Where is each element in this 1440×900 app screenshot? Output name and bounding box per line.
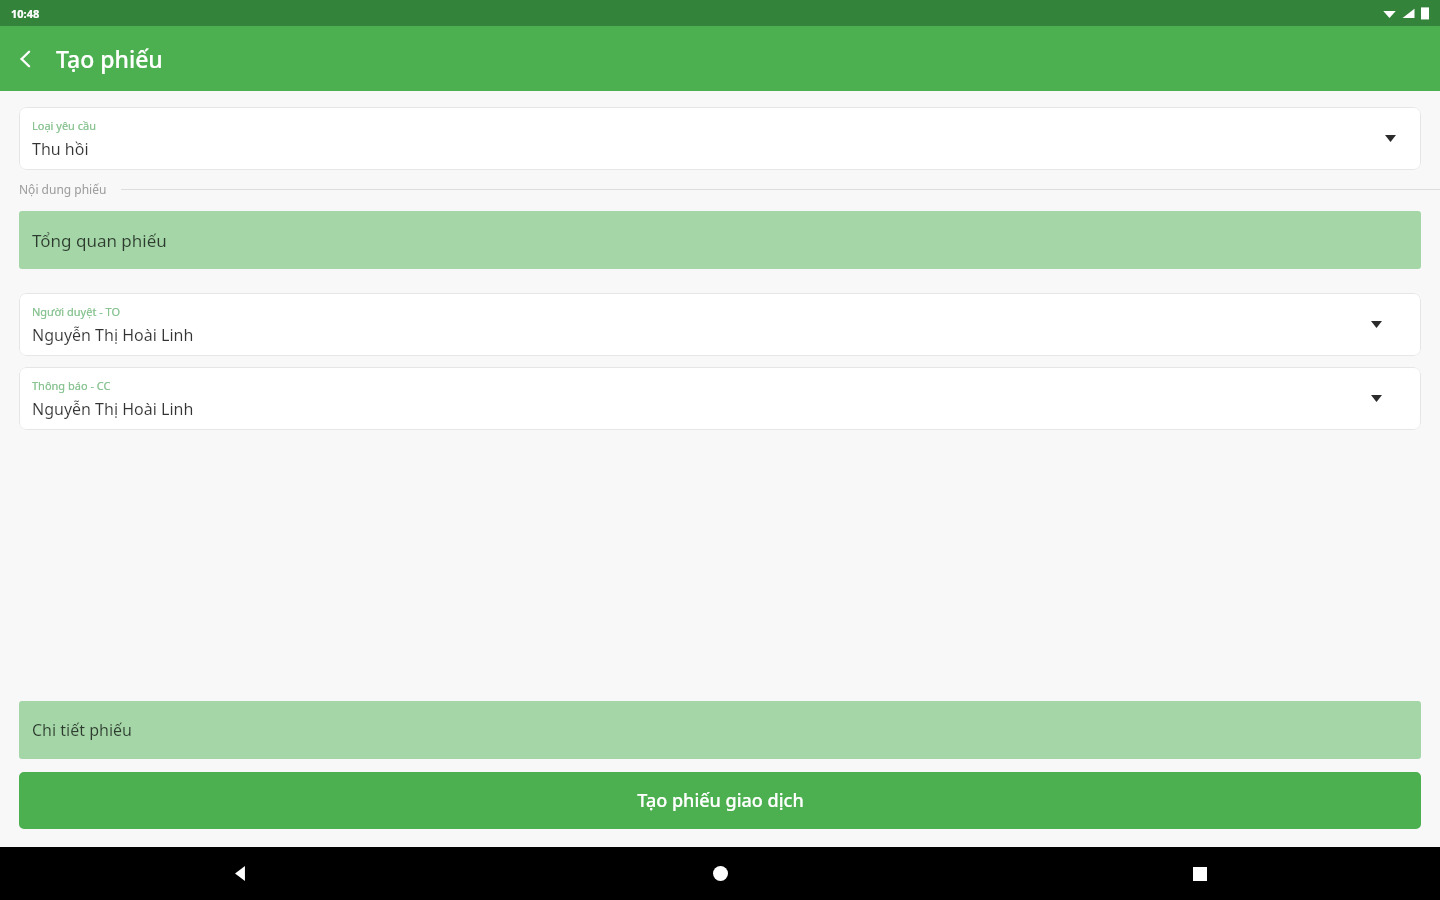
button[interactable]: Tổng quan phiếu	[19, 211, 1421, 269]
staticText: Nguyễn Thị Hoài Linh	[32, 398, 194, 420]
button[interactable]: Back	[5, 38, 47, 80]
button[interactable]: Recent apps	[960, 847, 1440, 900]
button[interactable]: Chi tiết phiếu	[19, 701, 1421, 759]
button[interactable]: Tạo phiếu giao dịch	[19, 772, 1421, 829]
button[interactable]: Home	[480, 847, 960, 900]
button[interactable]: Người duyệt - TO	[19, 293, 1421, 356]
staticText: Nội dung phiếu	[19, 181, 107, 197]
button[interactable]: Loại yêu cầu	[19, 107, 1421, 170]
staticText: Thu hồi	[32, 138, 89, 160]
staticText: Thông báo - CC	[32, 378, 111, 393]
staticText: Chi tiết phiếu	[32, 719, 132, 741]
button[interactable]: Back	[0, 847, 480, 900]
button[interactable]: Thông báo - CC	[19, 367, 1421, 430]
staticText: Người duyệt - TO	[32, 304, 121, 319]
staticText: Tổng quan phiếu	[32, 229, 167, 252]
staticText: Tạo phiếu	[56, 43, 163, 74]
staticText: Tạo phiếu giao dịch	[637, 788, 804, 813]
staticText: Loại yêu cầu	[32, 118, 97, 133]
staticText: 10:48	[11, 6, 40, 21]
staticText: Nguyễn Thị Hoài Linh	[32, 324, 194, 346]
